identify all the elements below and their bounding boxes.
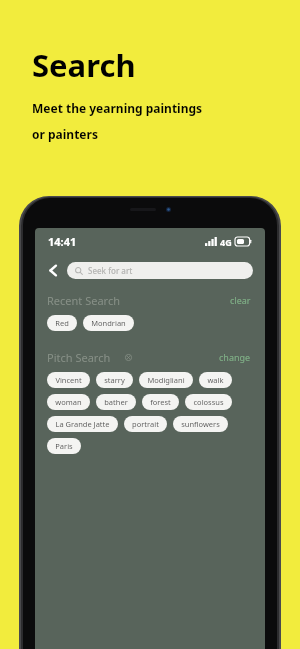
staticText: Paris — [55, 441, 73, 451]
staticText: walk — [207, 375, 224, 385]
staticText: colossus — [193, 397, 224, 407]
button[interactable]: Paris — [47, 438, 81, 454]
button[interactable]: woman — [47, 394, 90, 410]
staticText: Modigliani — [147, 375, 185, 385]
staticText: Red — [55, 318, 69, 328]
button[interactable]: Modigliani — [139, 372, 193, 388]
staticText: Meet the yearning paintings — [32, 100, 203, 116]
button[interactable]: Back — [43, 260, 63, 280]
staticText: 14:41 — [48, 234, 77, 249]
staticText: La Grande Jatte — [55, 419, 110, 429]
staticText: sunflowers — [181, 419, 220, 429]
staticText: portrait — [132, 419, 159, 429]
button[interactable]: forest — [142, 394, 179, 410]
staticText: clear — [230, 294, 251, 306]
button[interactable]: walk — [199, 372, 232, 388]
button[interactable]: colossus — [185, 394, 232, 410]
button[interactable]: La Grande Jatte — [47, 416, 118, 432]
staticText: starry — [104, 375, 125, 385]
staticText: change — [219, 351, 251, 363]
button[interactable]: Seek for art — [67, 262, 253, 279]
button[interactable]: change — [217, 349, 253, 365]
staticText: 4G — [220, 236, 232, 248]
staticText: Recent Search — [47, 293, 120, 308]
button[interactable]: starry — [96, 372, 133, 388]
button[interactable]: Vincent — [47, 372, 90, 388]
staticText: Vincent — [55, 375, 82, 385]
button[interactable]: clear — [228, 292, 253, 308]
staticText: bather — [104, 397, 128, 407]
button[interactable]: Red — [47, 315, 77, 331]
button[interactable]: portrait — [124, 416, 167, 432]
button[interactable]: sunflowers — [173, 416, 228, 432]
staticText: Search — [32, 44, 136, 86]
button[interactable]: bather — [96, 394, 136, 410]
button[interactable]: Mondrian — [83, 315, 134, 331]
staticText: Pitch Search — [47, 350, 111, 365]
button[interactable]: Info — [122, 351, 134, 363]
staticText: Seek for art — [88, 265, 133, 276]
staticText: Mondrian — [91, 318, 126, 328]
staticText: or painters — [32, 126, 98, 142]
staticText: forest — [150, 397, 171, 407]
staticText: woman — [55, 397, 82, 407]
